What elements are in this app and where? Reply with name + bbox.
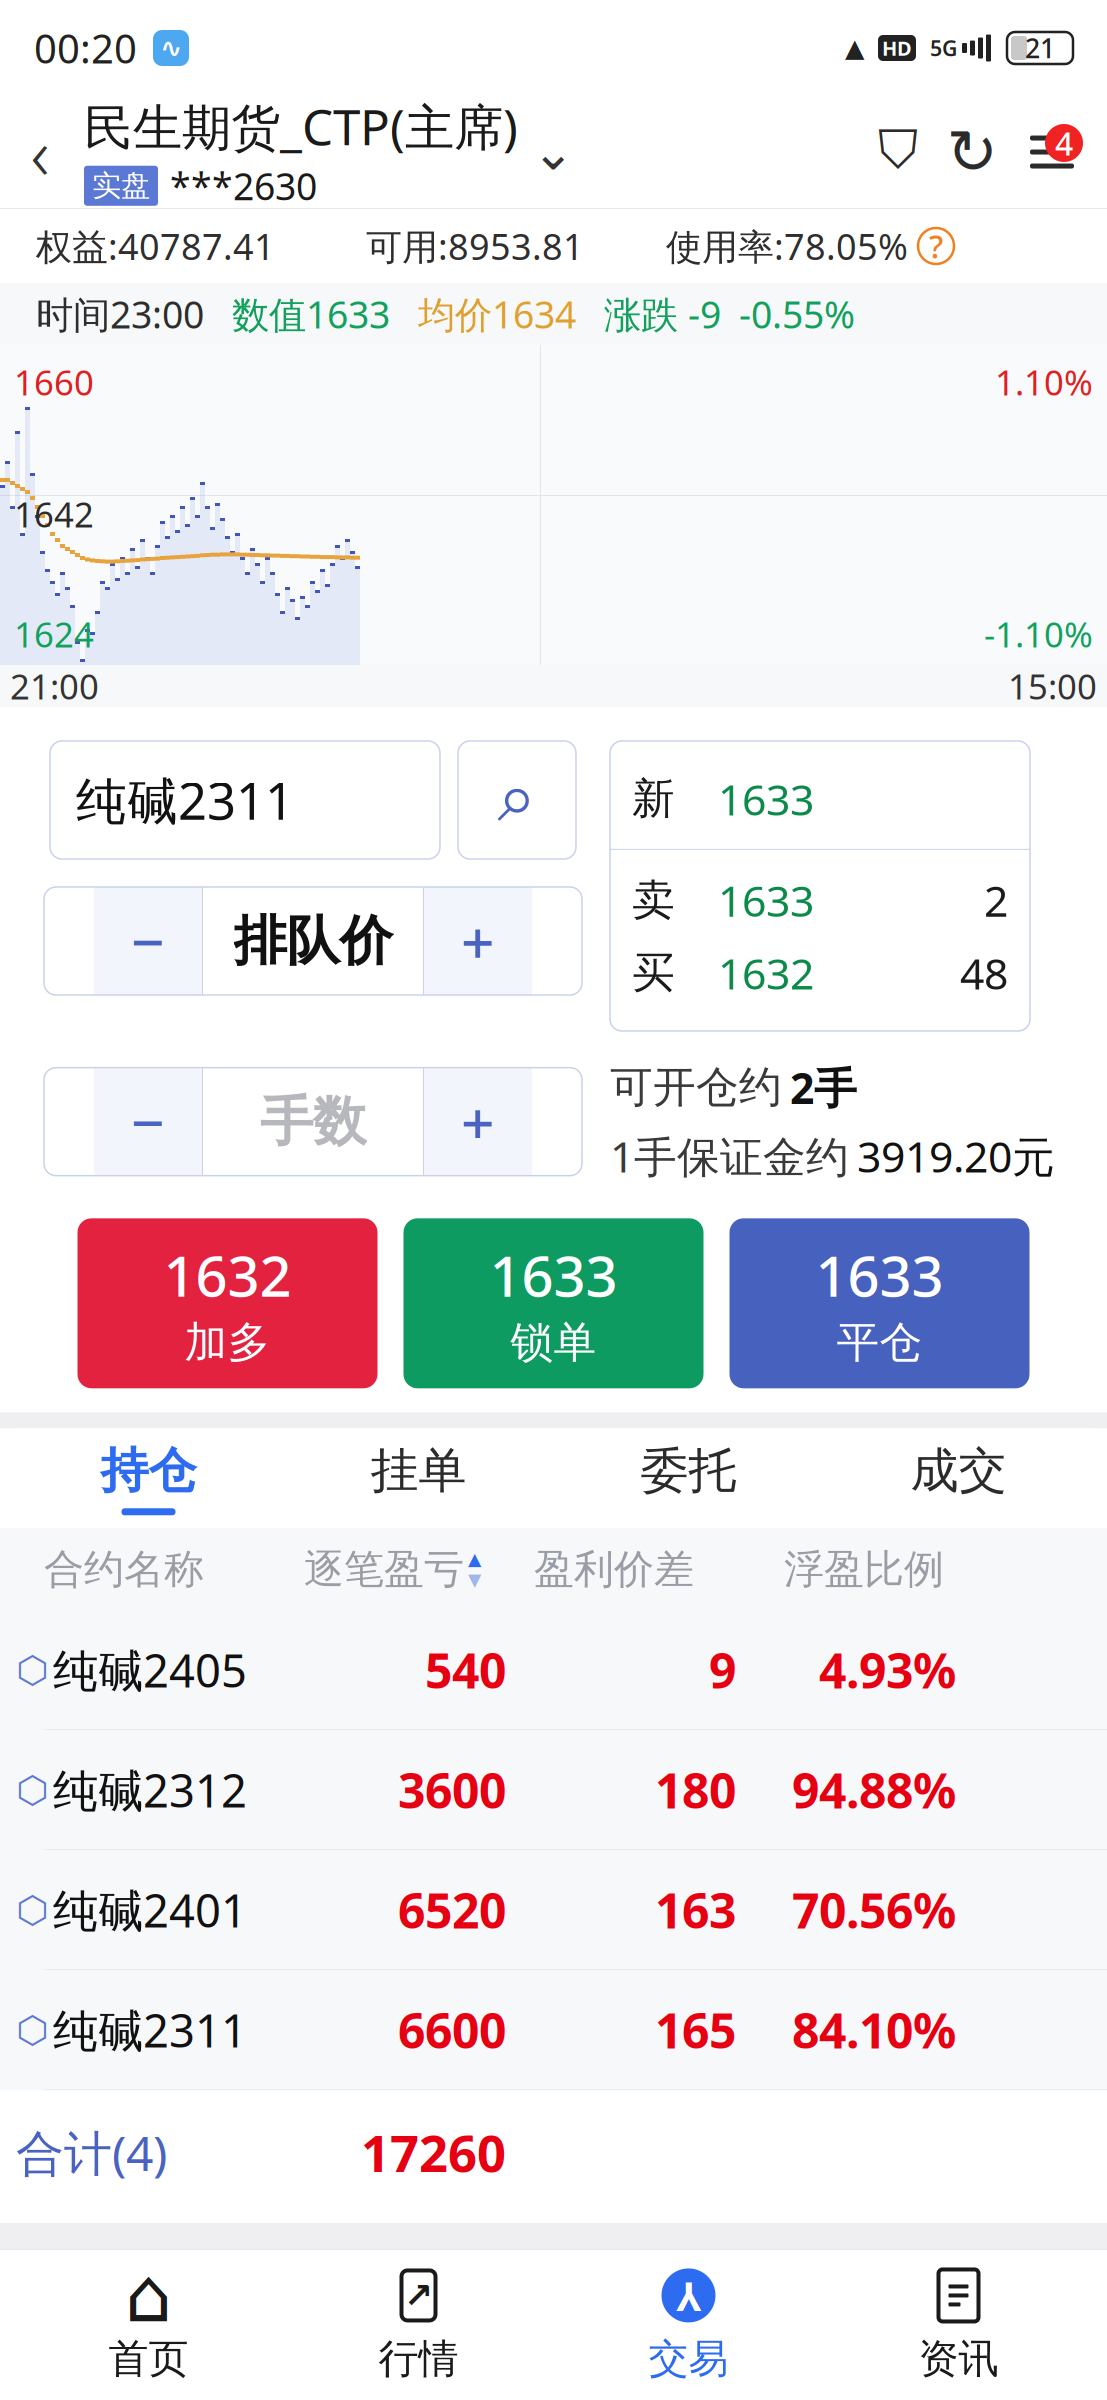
staticText: + (461, 902, 495, 980)
staticText: 加多 (184, 1316, 270, 1369)
button[interactable]: Increase 排队价 (424, 887, 532, 995)
button[interactable]: 成交 (823, 1428, 1093, 1528)
button[interactable]: Decrease 排队价 (94, 887, 202, 995)
button[interactable]: 1633 (729, 1218, 1029, 1388)
staticText: 1633 (489, 1238, 617, 1312)
staticText: 数值1633 (232, 289, 390, 339)
button[interactable]: ⬡ (0, 1850, 1107, 1970)
staticText: 1633 (815, 1238, 943, 1312)
staticText: ***2630 (170, 161, 317, 211)
staticText: 持仓 (100, 1441, 196, 1500)
button[interactable]: 纯碱2311 (50, 741, 440, 859)
staticText: 成交 (910, 1441, 1006, 1500)
staticText: 165 (655, 1998, 736, 2062)
staticText: 6520 (398, 1878, 506, 1942)
staticText: 排队价 (233, 908, 392, 974)
staticText: 3919.20元 (857, 1128, 1055, 1184)
button[interactable]: 持仓 (13, 1428, 283, 1528)
button[interactable]: Risk control (861, 97, 935, 207)
staticText: 180 (655, 1758, 736, 1822)
staticText: 00:20 (34, 21, 137, 74)
button[interactable]: Help (908, 228, 954, 264)
staticText: 2手 (790, 1059, 857, 1116)
staticText: 1642 (14, 491, 94, 537)
staticText: − (131, 902, 165, 980)
button[interactable]: Back (0, 97, 80, 207)
staticText: 新 (632, 773, 675, 825)
staticText: ▲ (845, 34, 864, 62)
staticText: 时间23:00 (36, 289, 204, 339)
staticText: ⌄ (532, 123, 574, 181)
button[interactable]: Search contract (458, 741, 576, 859)
button[interactable]: 民生期货_CTP(主席) (80, 93, 518, 211)
staticText: 540 (425, 1638, 506, 1702)
staticText: 纯碱2311 (53, 2000, 247, 2060)
staticText: ⬡ (16, 1889, 49, 1931)
staticText: 资讯 (918, 2334, 998, 2383)
staticText: ↗ (404, 2276, 433, 2315)
button[interactable]: 排队价 (203, 887, 423, 995)
staticText: 4 (1055, 122, 1073, 164)
staticText: 1624 (14, 611, 94, 657)
staticText: ▲ (468, 1549, 481, 1569)
button[interactable]: ⬡ (0, 1730, 1107, 1850)
staticText: 使用率:78.05% (666, 222, 908, 270)
button[interactable]: 挂单 (283, 1428, 553, 1528)
button[interactable]: Menu (1009, 97, 1095, 207)
staticText: -1.10% (984, 611, 1093, 657)
staticText: 买 (632, 947, 675, 999)
staticText: 涨跌 -9 (604, 289, 721, 339)
staticText: ⅄ (676, 2269, 701, 2322)
staticText: ↻ (946, 117, 997, 187)
button[interactable]: 委托 (553, 1428, 823, 1528)
staticText: 1633 (718, 770, 814, 827)
staticText: 纯碱2405 (53, 1640, 247, 1700)
staticText: 1手保证金约 (610, 1128, 849, 1184)
staticText: 可开仓约 (610, 1061, 782, 1113)
staticText: ▼ (468, 1570, 481, 1589)
staticText: 卖 (632, 874, 675, 926)
staticText: 1660 (14, 359, 94, 405)
staticText: ∿ (160, 33, 182, 63)
button[interactable]: ↗ (283, 2250, 553, 2400)
button[interactable]: ⅄ (553, 2250, 823, 2400)
button[interactable]: 手数 (203, 1068, 423, 1176)
staticText: 纯碱2401 (53, 1880, 247, 1940)
staticText: 6600 (398, 1998, 506, 2062)
button[interactable]: Increase 手数 (424, 1068, 532, 1176)
button[interactable]: ⬡ (0, 1610, 1107, 1730)
staticText: − (131, 1083, 165, 1161)
button[interactable]: 1632 (77, 1218, 377, 1388)
staticText: + (461, 1083, 495, 1161)
button[interactable]: 资讯 (823, 2250, 1093, 2400)
staticText: ⌕ (497, 766, 536, 834)
staticText: ⌂ (125, 2253, 172, 2338)
staticText: ? (929, 225, 943, 267)
staticText: 1.10% (995, 359, 1093, 405)
staticText: 21:00 (10, 663, 99, 709)
staticText: 163 (655, 1878, 736, 1942)
button[interactable]: 逐笔盈亏 (304, 1545, 534, 1594)
staticText: 17260 (361, 2119, 506, 2186)
staticText: 1632 (163, 1238, 291, 1312)
button[interactable]: ⬡ (0, 1970, 1107, 2090)
staticText: 15:00 (1008, 663, 1097, 709)
staticText: ‹ (30, 104, 49, 200)
button[interactable]: Refresh (935, 97, 1009, 207)
staticText: 21 (1025, 30, 1055, 66)
button[interactable]: Decrease 手数 (94, 1068, 202, 1176)
staticText: 首页 (108, 2334, 188, 2383)
button[interactable]: 1633 (403, 1218, 703, 1388)
button[interactable]: Switch account (518, 97, 588, 207)
staticText: 均价1634 (418, 289, 576, 339)
staticText: ⬡ (16, 1649, 49, 1691)
staticText: 锁单 (510, 1316, 596, 1369)
button[interactable]: ⌂ (13, 2250, 283, 2400)
staticText: 委托 (640, 1441, 736, 1500)
staticText: 94.88% (792, 1758, 956, 1822)
staticText: 70.56% (792, 1878, 956, 1942)
staticText: 平仓 (836, 1316, 922, 1369)
staticText: 1632 (718, 944, 814, 1001)
staticText: 合约名称 (44, 1545, 204, 1594)
staticText: ⛉ (878, 126, 918, 178)
